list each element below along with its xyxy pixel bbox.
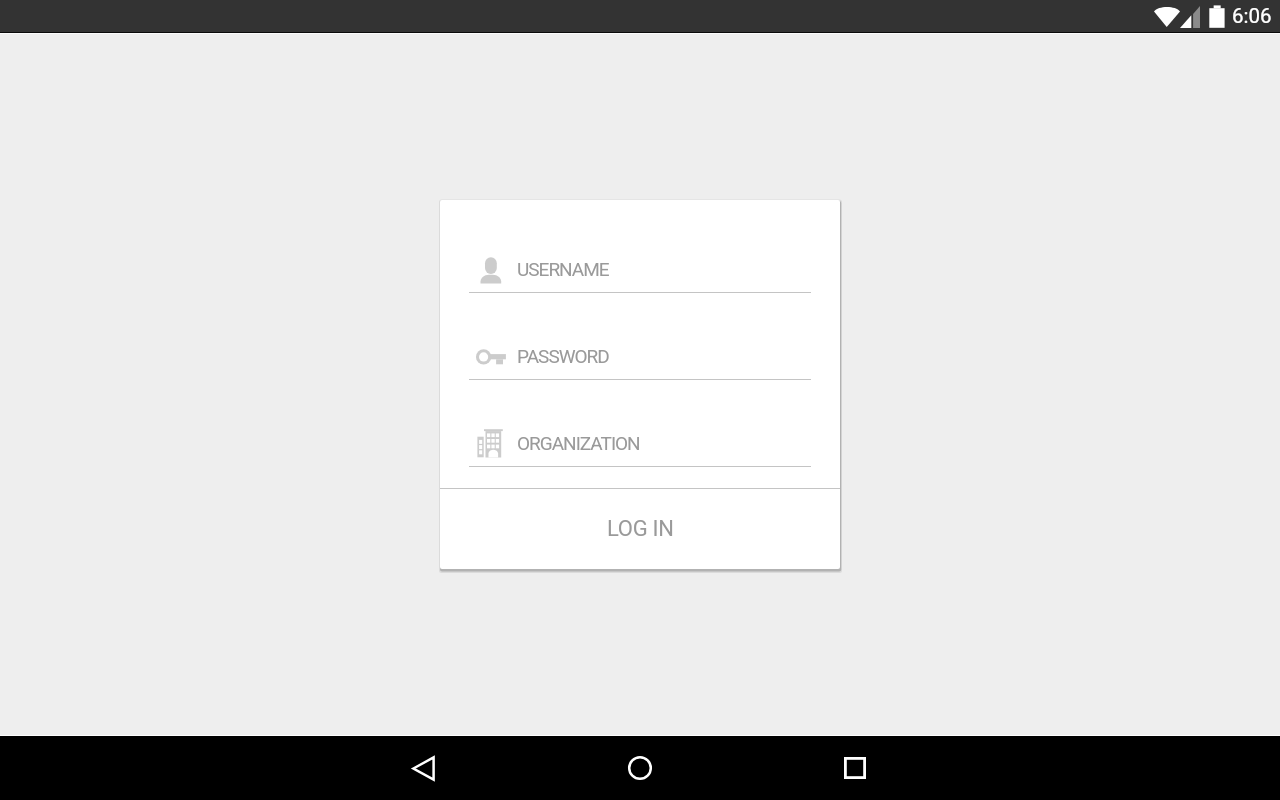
staticText: USERNAME <box>517 258 609 280</box>
staticText: 6:06 <box>1232 4 1272 28</box>
button[interactable]: LOG IN <box>440 489 840 569</box>
staticText: ORGANIZATION <box>517 432 640 454</box>
staticText: PASSWORD <box>517 345 609 367</box>
button[interactable]: PASSWORD <box>469 334 811 380</box>
button[interactable]: Recent apps <box>823 736 887 800</box>
button[interactable]: Home <box>608 736 672 800</box>
button[interactable]: USERNAME <box>469 247 811 293</box>
button[interactable]: Back <box>391 736 455 800</box>
button[interactable]: ORGANIZATION <box>469 421 811 467</box>
staticText: LOG IN <box>607 516 674 542</box>
